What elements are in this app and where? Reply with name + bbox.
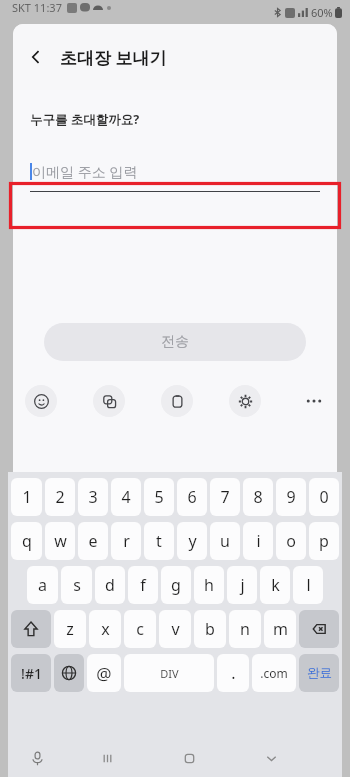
button[interactable]: 9 — [276, 478, 306, 516]
button[interactable]: .com — [252, 654, 296, 692]
button[interactable]: Language — [54, 654, 84, 692]
staticText: g — [171, 574, 181, 596]
button[interactable]: 완료 — [299, 654, 339, 692]
button[interactable]: 0 — [309, 478, 339, 516]
button[interactable]: Home — [148, 739, 230, 777]
button[interactable]: c — [124, 610, 156, 648]
button[interactable]: Voice input — [8, 739, 66, 777]
staticText: .com — [260, 665, 288, 681]
button[interactable]: Backspace — [299, 610, 339, 648]
staticText: DIV — [160, 666, 179, 681]
staticText: j — [240, 574, 245, 596]
staticText: x — [101, 618, 110, 640]
staticText: n — [240, 618, 250, 640]
staticText: c — [136, 618, 144, 640]
staticText: . — [231, 662, 236, 684]
button[interactable]: v — [159, 610, 191, 648]
staticText: m — [273, 618, 288, 640]
staticText: f — [140, 574, 146, 596]
staticText: p — [319, 530, 329, 552]
button[interactable]: Shift — [11, 610, 51, 648]
button[interactable]: j — [227, 566, 257, 604]
staticText: d — [105, 574, 115, 596]
staticText: u — [220, 530, 230, 552]
staticText: @ — [96, 662, 112, 685]
button[interactable]: d — [95, 566, 125, 604]
button[interactable]: 4 — [111, 478, 141, 516]
button[interactable]: Settings — [229, 385, 261, 417]
staticText: o — [286, 530, 296, 552]
staticText: 3 — [88, 486, 98, 508]
staticText: 초대장 보내기 — [60, 46, 167, 69]
staticText: 전송 — [161, 333, 189, 351]
button[interactable]: b — [194, 610, 226, 648]
staticText: r — [123, 530, 130, 552]
staticText: z — [66, 618, 74, 640]
button[interactable]: n — [229, 610, 261, 648]
button[interactable]: 2 — [45, 478, 75, 516]
button[interactable]: i — [243, 522, 273, 560]
button[interactable]: @ — [87, 654, 121, 692]
button[interactable]: y — [177, 522, 207, 560]
button[interactable]: r — [111, 522, 141, 560]
staticText: 8 — [253, 486, 263, 508]
staticText: 4 — [121, 486, 131, 508]
button[interactable]: !#1 — [11, 654, 51, 692]
button[interactable]: DIV — [124, 654, 214, 692]
button[interactable]: More options — [297, 384, 331, 418]
button[interactable]: . — [217, 654, 249, 692]
staticText: 60% — [311, 5, 333, 20]
button[interactable]: Back — [18, 39, 54, 75]
button[interactable]: p — [309, 522, 339, 560]
button[interactable]: o — [276, 522, 306, 560]
button[interactable]: a — [27, 566, 58, 604]
button[interactable]: 3 — [78, 478, 108, 516]
button[interactable]: Translate — [93, 385, 125, 417]
staticText: 5 — [154, 486, 164, 508]
staticText: 7 — [220, 486, 230, 508]
button[interactable]: Emoji — [25, 385, 57, 417]
staticText: SKT 11:37 — [12, 0, 62, 15]
button[interactable]: z — [54, 610, 86, 648]
button[interactable]: m — [264, 610, 296, 648]
staticText: q — [22, 530, 32, 552]
button[interactable]: 7 — [210, 478, 240, 516]
button[interactable]: h — [194, 566, 224, 604]
staticText: a — [38, 574, 47, 596]
staticText: s — [73, 574, 81, 596]
staticText: 6 — [187, 486, 197, 508]
button[interactable]: t — [144, 522, 174, 560]
staticText: b — [205, 618, 215, 640]
button[interactable]: 전송 — [44, 323, 306, 361]
button[interactable]: 5 — [144, 478, 174, 516]
staticText: l — [306, 574, 311, 596]
staticText: k — [271, 574, 280, 596]
button[interactable]: g — [161, 566, 191, 604]
button[interactable]: e — [78, 522, 108, 560]
staticText: v — [171, 618, 180, 640]
button[interactable]: k — [260, 566, 290, 604]
staticText: 이메일 주소 입력 — [32, 162, 138, 181]
button[interactable]: 8 — [243, 478, 273, 516]
button[interactable]: Clipboard — [161, 385, 193, 417]
button[interactable]: Hide keyboard — [230, 739, 312, 777]
button[interactable]: w — [45, 522, 75, 560]
staticText: 9 — [286, 486, 296, 508]
staticText: 완료 — [307, 665, 332, 681]
staticText: e — [88, 530, 98, 552]
button[interactable]: x — [89, 610, 121, 648]
button[interactable]: f — [128, 566, 158, 604]
button[interactable]: q — [11, 522, 42, 560]
button[interactable]: 1 — [11, 478, 42, 516]
button[interactable]: s — [61, 566, 92, 604]
button[interactable]: 이메일 주소 입력 — [30, 150, 320, 192]
staticText: 2 — [55, 486, 65, 508]
button[interactable]: u — [210, 522, 240, 560]
staticText: 1 — [22, 486, 32, 508]
button[interactable]: 6 — [177, 478, 207, 516]
button[interactable]: Recents — [66, 739, 148, 777]
staticText: i — [256, 530, 261, 552]
staticText: !#1 — [21, 664, 42, 683]
button[interactable]: l — [293, 566, 323, 604]
staticText: 누구를 초대할까요? — [30, 111, 140, 128]
